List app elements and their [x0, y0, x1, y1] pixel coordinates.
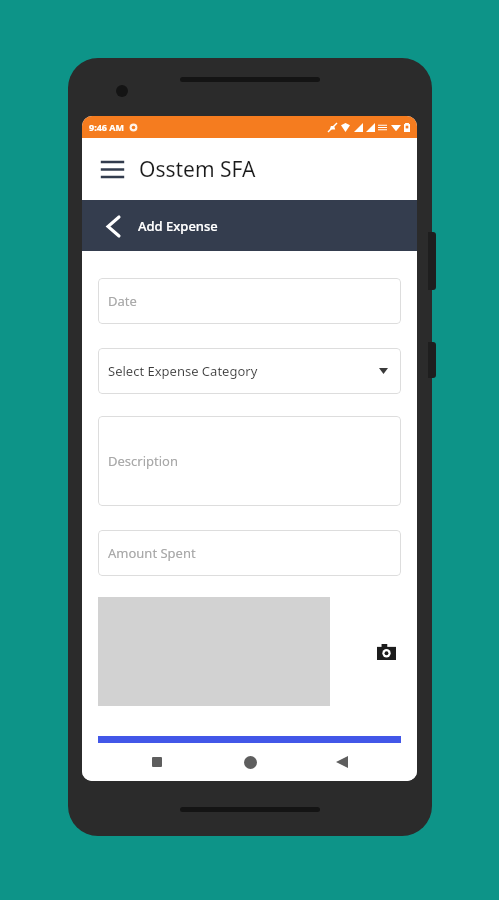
button[interactable]: Recent apps — [139, 744, 175, 780]
staticText: Add Expense — [138, 217, 218, 235]
button[interactable]: Back — [324, 744, 360, 780]
button[interactable]: Take photo — [371, 637, 401, 667]
staticText: Date — [108, 292, 137, 310]
button[interactable]: Date — [98, 278, 401, 324]
button[interactable]: Open navigation menu — [96, 153, 128, 185]
button[interactable]: Select Expense Category — [98, 348, 401, 394]
button[interactable]: Description — [98, 416, 401, 506]
staticText: Amount Spent — [108, 544, 196, 562]
staticText: 9:46 AM — [89, 121, 125, 133]
staticText: Select Expense Category — [108, 362, 258, 380]
staticText: Description — [108, 452, 178, 470]
button[interactable]: Amount Spent — [98, 530, 401, 576]
staticText: Osstem SFA — [139, 155, 256, 184]
button[interactable]: Home — [232, 744, 268, 780]
button[interactable]: Back — [96, 209, 130, 243]
